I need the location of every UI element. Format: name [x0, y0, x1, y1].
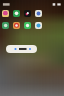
button[interactable]: Maps [35, 10, 42, 17]
button[interactable]: Chrome [13, 22, 20, 29]
button[interactable]: Telegram [35, 22, 42, 29]
button[interactable]: TikTok [24, 10, 31, 17]
button[interactable]: Search [6, 45, 37, 53]
button[interactable]: Messages [13, 10, 20, 17]
button[interactable]: WhatsApp [24, 22, 31, 29]
button[interactable]: Spotify [2, 22, 9, 29]
button[interactable]: Photos [2, 10, 9, 17]
